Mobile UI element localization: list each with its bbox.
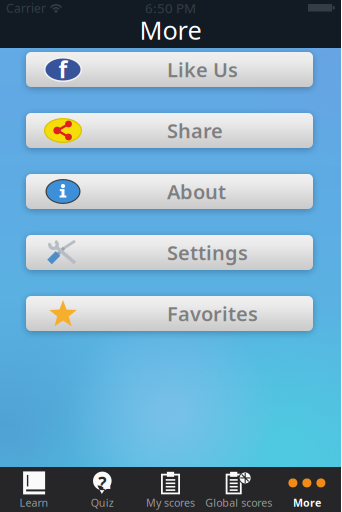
button[interactable]: Learn [0, 467, 68, 512]
staticText: 6:50 PM [145, 0, 196, 17]
button[interactable]: Favorites [26, 296, 313, 331]
staticText: Like Us [167, 56, 238, 83]
staticText: Favorites [167, 300, 258, 327]
button[interactable]: Global scores [205, 467, 273, 512]
staticText: About [167, 178, 226, 205]
button[interactable]: Settings [26, 235, 313, 270]
button[interactable]: More [273, 467, 341, 512]
staticText: More [293, 495, 321, 510]
staticText: Learn [20, 495, 49, 510]
staticText: Share [167, 117, 223, 144]
button[interactable]: ? [68, 467, 136, 512]
button[interactable]: My scores [136, 467, 205, 512]
button[interactable]: f [26, 52, 313, 87]
button[interactable]: Share [26, 113, 313, 148]
staticText: Global scores [205, 495, 272, 510]
staticText: f [58, 54, 67, 84]
button[interactable]: About [26, 174, 313, 209]
staticText: Quiz [91, 495, 114, 510]
staticText: ? [98, 471, 106, 494]
staticText: Settings [167, 239, 248, 266]
staticText: More [139, 13, 201, 47]
staticText: My scores [146, 495, 195, 510]
staticText: Carrier [6, 0, 46, 16]
